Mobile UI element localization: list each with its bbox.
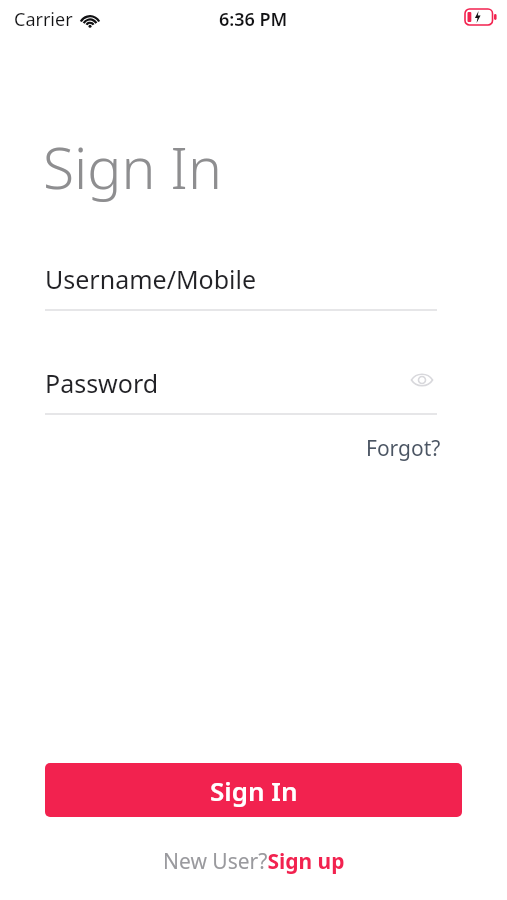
staticText: Carrier — [14, 7, 73, 32]
staticText: Sign In — [43, 128, 222, 206]
button[interactable]: Show password — [407, 368, 437, 392]
staticText: New User?Sign up — [163, 847, 345, 876]
staticText: Sign In — [210, 773, 298, 808]
staticText: Password — [45, 366, 159, 400]
staticText: Username/Mobile — [45, 262, 257, 296]
staticText: 6:36 PM — [219, 7, 288, 32]
button[interactable]: New User?Sign up — [159, 845, 349, 878]
staticText: Forgot? — [366, 434, 441, 463]
button[interactable]: Password — [45, 366, 437, 415]
button[interactable]: Username/Mobile — [45, 262, 437, 311]
button[interactable]: Forgot? — [360, 430, 447, 467]
button[interactable]: Sign In — [45, 763, 462, 817]
